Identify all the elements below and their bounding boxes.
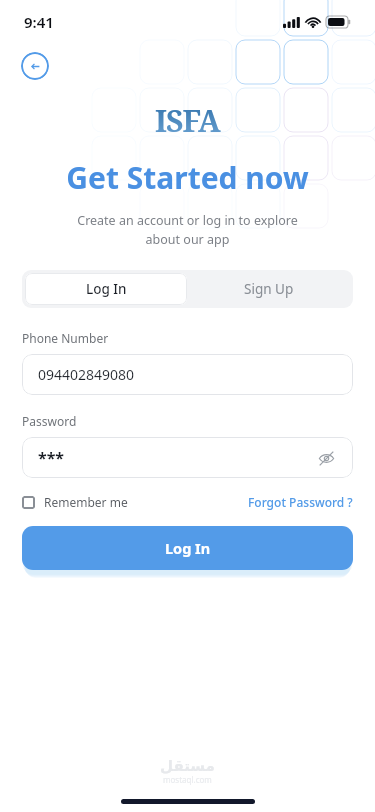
button[interactable]: Remember me (22, 494, 128, 510)
staticText: Get Started now (66, 157, 309, 198)
button[interactable]: 094402849080 (22, 354, 353, 395)
button[interactable]: Back (21, 52, 49, 80)
staticText: Create an account or log in to explore a… (77, 212, 298, 248)
staticText: mostaql.com (163, 774, 212, 785)
button[interactable]: Log In (25, 273, 187, 305)
staticText: Sign Up (244, 280, 294, 298)
button[interactable]: Show password (315, 447, 337, 469)
staticText: Phone Number (22, 330, 109, 346)
button[interactable]: Forgot Password ? (248, 494, 353, 510)
button[interactable]: Sign Up (187, 273, 350, 305)
staticText: Log In (86, 280, 127, 298)
staticText: 9:41 (24, 12, 54, 32)
staticText: Password (22, 413, 77, 429)
staticText: Forgot Password ? (248, 494, 353, 510)
button[interactable]: Log In (22, 526, 353, 570)
staticText: Log In (165, 538, 211, 558)
staticText: مستقل (160, 757, 215, 774)
staticText: Remember me (44, 494, 128, 510)
staticText: 094402849080 (38, 365, 135, 384)
button[interactable]: *** (22, 437, 353, 478)
staticText: *** (38, 447, 65, 469)
staticText: ISFA (155, 100, 220, 141)
